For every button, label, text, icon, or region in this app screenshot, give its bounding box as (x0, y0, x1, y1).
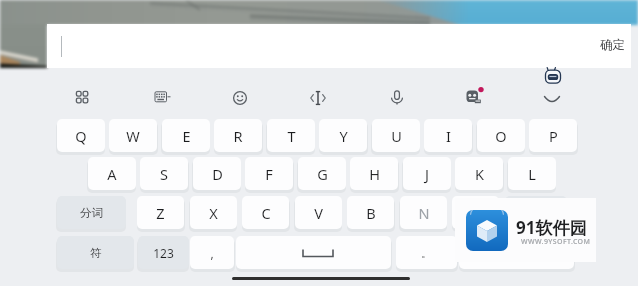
staticText: T (287, 126, 296, 146)
staticText: 分词 (80, 206, 103, 220)
button[interactable]: 123 (138, 236, 189, 269)
button[interactable]: N (400, 196, 447, 229)
button[interactable]: F (245, 157, 293, 190)
button[interactable]: Hide keyboard (539, 88, 565, 114)
staticText: L (528, 164, 536, 184)
button[interactable]: 符 (57, 236, 134, 269)
button[interactable]: Apps (74, 89, 92, 107)
button[interactable]: AI assistant (464, 87, 486, 109)
staticText: U (391, 126, 402, 146)
staticText: N (418, 203, 430, 223)
staticText: F (265, 164, 273, 184)
button[interactable]: , (190, 236, 234, 269)
button[interactable]: O (477, 119, 525, 152)
button[interactable]: K (455, 157, 503, 190)
button[interactable] (505, 196, 567, 229)
staticText: G (317, 164, 328, 184)
staticText: V (314, 203, 323, 223)
button[interactable]: Y (319, 119, 367, 152)
staticText: , (210, 245, 214, 261)
button[interactable]: X (190, 196, 237, 229)
button[interactable]: C (242, 196, 289, 229)
staticText: A (107, 164, 117, 184)
staticText: J (425, 164, 429, 184)
staticText: K (475, 164, 484, 184)
button[interactable]: M (452, 196, 499, 229)
staticText: X (209, 203, 218, 223)
button[interactable]: A (88, 157, 136, 190)
button[interactable] (236, 236, 391, 269)
staticText: E (182, 126, 191, 146)
staticText: M (469, 203, 483, 223)
staticText: W (126, 126, 140, 146)
staticText: WWW.9YSOFT.COM (521, 237, 591, 247)
button[interactable]: J (403, 157, 451, 190)
staticText: O (495, 126, 507, 146)
staticText: S (160, 164, 168, 184)
button[interactable]: Switch keyboard (153, 89, 171, 107)
staticText: Z (156, 203, 165, 223)
button[interactable]: V (295, 196, 342, 229)
button[interactable]: 分词 (57, 196, 126, 229)
staticText: 确定 (600, 37, 625, 53)
button[interactable]: G (298, 157, 346, 190)
button[interactable] (459, 236, 574, 269)
button[interactable]: Q (57, 119, 105, 152)
button[interactable]: B (347, 196, 394, 229)
button[interactable]: Emoji (231, 89, 249, 107)
staticText: H (369, 164, 380, 184)
button[interactable]: D (193, 157, 241, 190)
staticText: C (261, 203, 271, 223)
staticText: I (446, 126, 451, 146)
staticText: D (212, 164, 223, 184)
staticText: 91软件园 (516, 216, 587, 239)
button[interactable]: I (424, 119, 472, 152)
button[interactable]: Z (137, 196, 184, 229)
staticText: Q (75, 126, 87, 146)
button[interactable]: 确定 (594, 31, 630, 59)
staticText: P (549, 126, 558, 146)
staticText: B (366, 203, 376, 223)
staticText: 123 (153, 245, 174, 261)
button[interactable]: U (372, 119, 420, 152)
button[interactable]: T (267, 119, 315, 152)
button[interactable]: S (140, 157, 188, 190)
button[interactable]: W (109, 119, 157, 152)
staticText: 符 (90, 246, 102, 260)
button[interactable]: L (508, 157, 556, 190)
button[interactable]: R (214, 119, 262, 152)
button[interactable]: Assistant (541, 64, 563, 86)
button[interactable]: Voice input (388, 89, 406, 107)
button[interactable]: E (162, 119, 210, 152)
button[interactable]: Move cursor (309, 89, 327, 107)
staticText: 。 (421, 246, 432, 260)
button[interactable] (47, 24, 631, 68)
button[interactable]: 。 (396, 236, 457, 269)
staticText: Y (339, 126, 348, 146)
staticText: R (233, 126, 243, 146)
button[interactable]: P (529, 119, 577, 152)
button[interactable]: H (350, 157, 398, 190)
